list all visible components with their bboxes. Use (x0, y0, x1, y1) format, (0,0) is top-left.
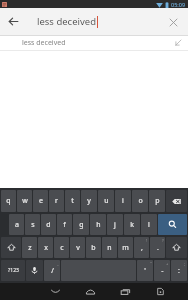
staticText: / (51, 266, 54, 276)
button[interactable]: a (9, 214, 24, 235)
staticText: o (138, 196, 143, 206)
staticText: p (155, 196, 160, 206)
button[interactable]: less deceived (0, 36, 188, 50)
other: Insert suggestion (171, 36, 185, 50)
button[interactable]: h (90, 214, 106, 235)
button[interactable]: l (141, 214, 157, 235)
staticText: ' (144, 266, 146, 276)
staticText: q (6, 196, 11, 206)
staticText: m (122, 243, 129, 253)
staticText: e (39, 196, 43, 206)
button[interactable]: n (102, 237, 117, 258)
staticText: w (22, 196, 28, 206)
button[interactable]: q (1, 190, 16, 212)
staticText: x (44, 243, 48, 253)
button[interactable]: , (134, 237, 149, 258)
staticText: , (141, 243, 143, 253)
button[interactable]: d (41, 214, 56, 235)
button[interactable]: Shift (166, 237, 187, 258)
staticText: less deceived (37, 15, 96, 28)
staticText: s (31, 220, 35, 230)
button[interactable]: Back (38, 283, 73, 300)
staticText: h (96, 220, 101, 230)
staticText: _ (57, 261, 59, 266)
staticText: y (87, 196, 91, 206)
button[interactable]: k (124, 214, 140, 235)
staticText: + (166, 261, 169, 266)
staticText: 05:09 (171, 1, 186, 8)
button[interactable]: g (73, 214, 89, 235)
button[interactable]: w (17, 190, 32, 212)
button[interactable]: r (49, 190, 64, 212)
staticText: k (130, 220, 134, 230)
staticText: l (148, 220, 150, 230)
staticText: b (91, 243, 96, 253)
staticText: f (63, 220, 66, 230)
staticText: ; (184, 261, 186, 266)
staticText: a (15, 220, 19, 230)
staticText: less deceived (22, 38, 66, 48)
button[interactable]: b (86, 237, 101, 258)
staticText: n (107, 243, 112, 253)
button[interactable]: Voice input (26, 260, 43, 281)
button[interactable]: Recent apps (108, 283, 143, 300)
button[interactable]: s (25, 214, 40, 235)
button[interactable]: v (70, 237, 85, 258)
button[interactable]: o (132, 190, 148, 212)
button[interactable]: Search (158, 214, 187, 235)
button[interactable]: u (98, 190, 114, 212)
button[interactable]: e (33, 190, 48, 212)
button[interactable]: Home (73, 283, 108, 300)
staticText: c (60, 243, 64, 253)
button[interactable]: Shift (1, 237, 21, 258)
button[interactable]: j (107, 214, 123, 235)
button[interactable]: Screenshot (143, 283, 178, 300)
staticText: u (104, 196, 109, 206)
staticText: ?123 (8, 267, 19, 274)
staticText: v (76, 243, 80, 253)
staticText: " (150, 261, 152, 266)
staticText: ? (162, 238, 164, 243)
button[interactable]: y (81, 190, 97, 212)
staticText: z (28, 243, 32, 253)
button[interactable]: - (154, 260, 170, 281)
button[interactable]: . (150, 237, 165, 258)
button[interactable]: : (171, 260, 187, 281)
staticText: t (71, 196, 74, 206)
button[interactable]: f (57, 214, 72, 235)
staticText: : (178, 266, 180, 276)
button[interactable]: Backspace (166, 190, 187, 212)
button[interactable]: Clear query (161, 10, 185, 34)
button[interactable]: / (44, 260, 60, 281)
staticText: r (55, 196, 58, 206)
button[interactable]: i (115, 190, 131, 212)
staticText: d (46, 220, 51, 230)
button[interactable]: x (38, 237, 53, 258)
button[interactable]: z (22, 237, 37, 258)
button[interactable]: p (149, 190, 165, 212)
button[interactable]: c (54, 237, 69, 258)
button[interactable]: m (118, 237, 133, 258)
staticText: . (157, 243, 159, 253)
button[interactable]: ?123 (1, 260, 25, 281)
button[interactable]: t (65, 190, 80, 212)
staticText: ! (146, 238, 148, 243)
staticText: - (161, 266, 164, 276)
staticText: g (79, 220, 84, 230)
staticText: i (122, 196, 124, 206)
button[interactable]: ' (137, 260, 153, 281)
button[interactable]: Back (0, 8, 27, 35)
staticText: j (114, 220, 116, 230)
